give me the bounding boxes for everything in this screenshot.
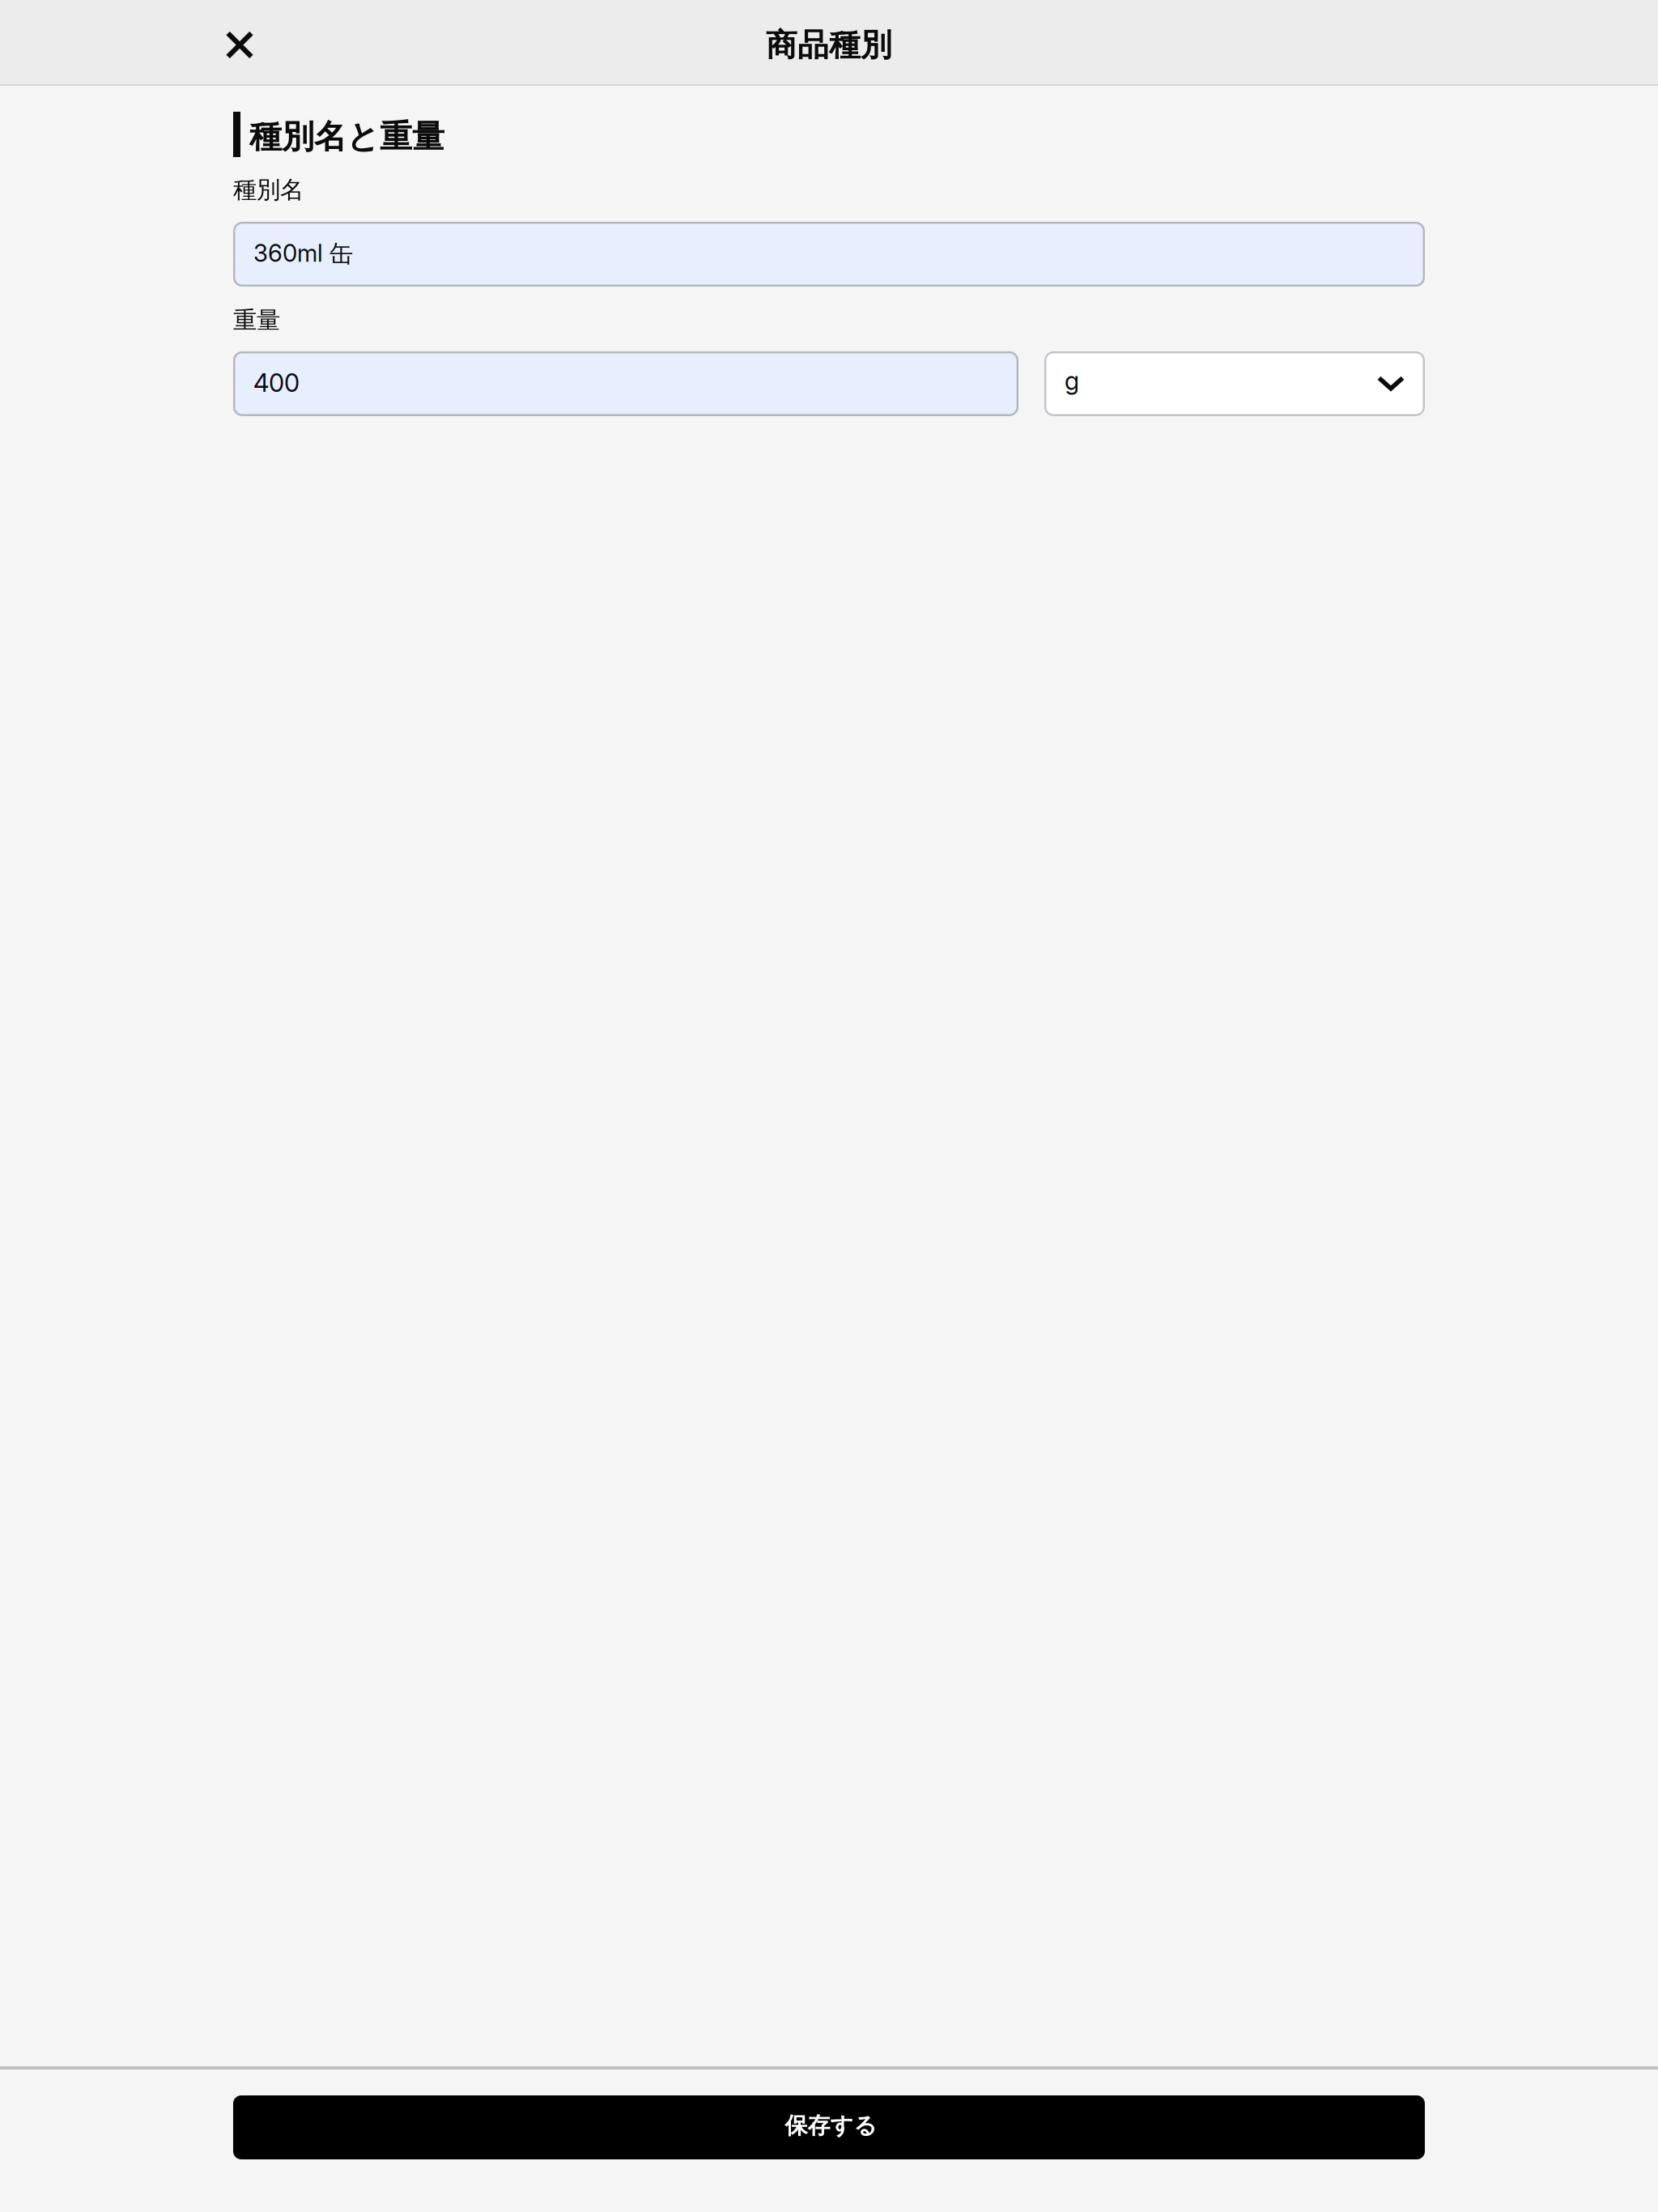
button[interactable]: 閉じる	[210, 16, 269, 74]
button[interactable]: 保存する	[233, 2095, 1425, 2159]
staticText: 400	[253, 368, 300, 398]
staticText: 商品種別	[766, 25, 892, 65]
staticText: 種別名	[233, 175, 304, 205]
staticText: 重量	[233, 305, 280, 335]
staticText: 360ml 缶	[253, 239, 353, 269]
button[interactable]: g	[1044, 351, 1425, 416]
staticText: g	[1065, 366, 1079, 396]
staticText: 保存する	[785, 2112, 877, 2140]
staticText: 種別名と重量	[249, 116, 444, 157]
